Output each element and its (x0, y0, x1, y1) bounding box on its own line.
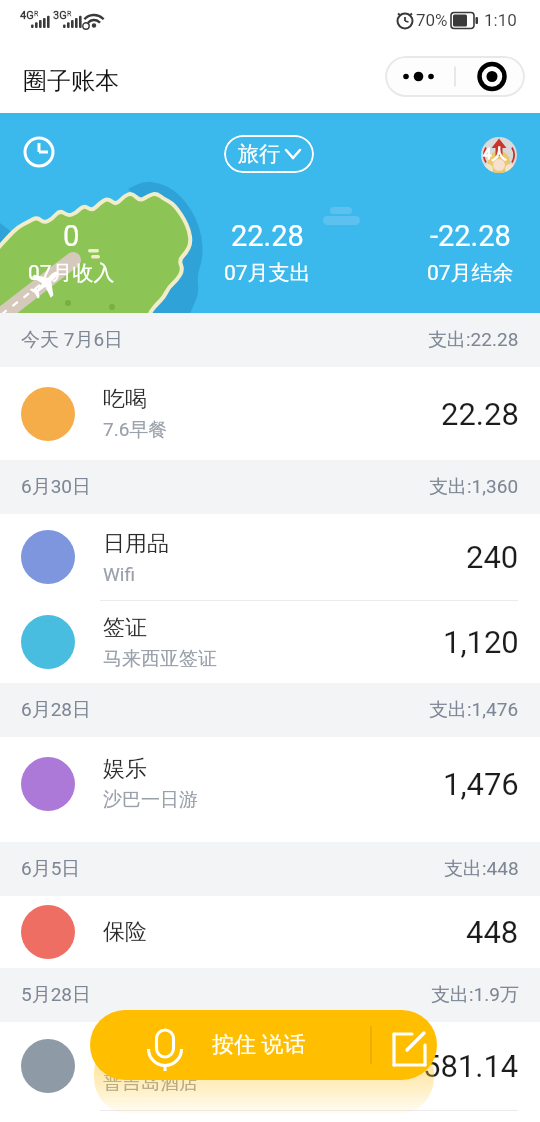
staticText: 6月5日 (21, 857, 81, 881)
staticText: Wifi (103, 563, 136, 585)
staticText: 6月28日 (21, 698, 92, 722)
button[interactable]: 签证 (0, 601, 540, 683)
staticText: 今天 7月6日 (21, 328, 124, 352)
staticText: 0 (63, 219, 80, 253)
button[interactable]: 住宿 (0, 1022, 540, 1110)
staticText: 1:10 (484, 10, 517, 30)
button[interactable]: 吃喝 (0, 367, 540, 460)
button[interactable] (385, 56, 525, 97)
staticText: 马来西亚签证 (103, 647, 217, 671)
staticText: 07月结余 (427, 260, 514, 286)
button[interactable]: 4人 (481, 137, 517, 173)
staticText: 7.6早餐 (103, 418, 168, 442)
staticText: 448 (466, 914, 519, 950)
staticText: 圈子账本 (23, 66, 119, 96)
staticText: 支出:1.9万 (431, 983, 519, 1007)
staticText: 日用品 (103, 530, 169, 558)
staticText: 支出:448 (444, 857, 519, 881)
staticText: 22.28 (231, 219, 304, 253)
staticText: 5月28日 (21, 983, 92, 1007)
staticText: 4G (20, 9, 34, 22)
staticText: 保险 (103, 918, 147, 946)
staticText: 沙巴一日游 (103, 788, 198, 812)
staticText: 旅行 (238, 141, 280, 167)
staticText: 娱乐 (103, 755, 147, 783)
button[interactable]: 日用品 (0, 514, 540, 600)
staticText: 1,476 (443, 766, 519, 802)
staticText: R (67, 10, 72, 18)
staticText: 支出:22.28 (428, 328, 519, 352)
button[interactable]: 按住 说话 (90, 1010, 437, 1080)
staticText: 70% (416, 10, 448, 30)
staticText: 3G (53, 9, 67, 22)
button[interactable]: 保险 (0, 896, 540, 968)
staticText: 581.14 (423, 1048, 519, 1084)
staticText: 签证 (103, 614, 147, 642)
staticText: 07月支出 (224, 260, 311, 286)
staticText: 支出:1,476 (429, 698, 519, 722)
button[interactable]: 娱乐 (0, 737, 540, 842)
staticText: 1,120 (443, 624, 519, 660)
staticText: 吃喝 (103, 385, 147, 413)
staticText: 240 (466, 539, 519, 575)
staticText: 普吉岛酒店 (103, 1071, 198, 1095)
staticText: 22.28 (441, 396, 519, 432)
staticText: 4人 (483, 145, 507, 164)
button[interactable]: 旅行 (224, 135, 314, 173)
staticText: 按住 说话 (212, 1031, 306, 1059)
staticText: R (34, 10, 39, 18)
staticText: 6月30日 (21, 475, 92, 499)
staticText: -22.28 (430, 219, 511, 253)
staticText: 支出:1,360 (429, 475, 519, 499)
staticText: 07月收入 (28, 260, 115, 286)
